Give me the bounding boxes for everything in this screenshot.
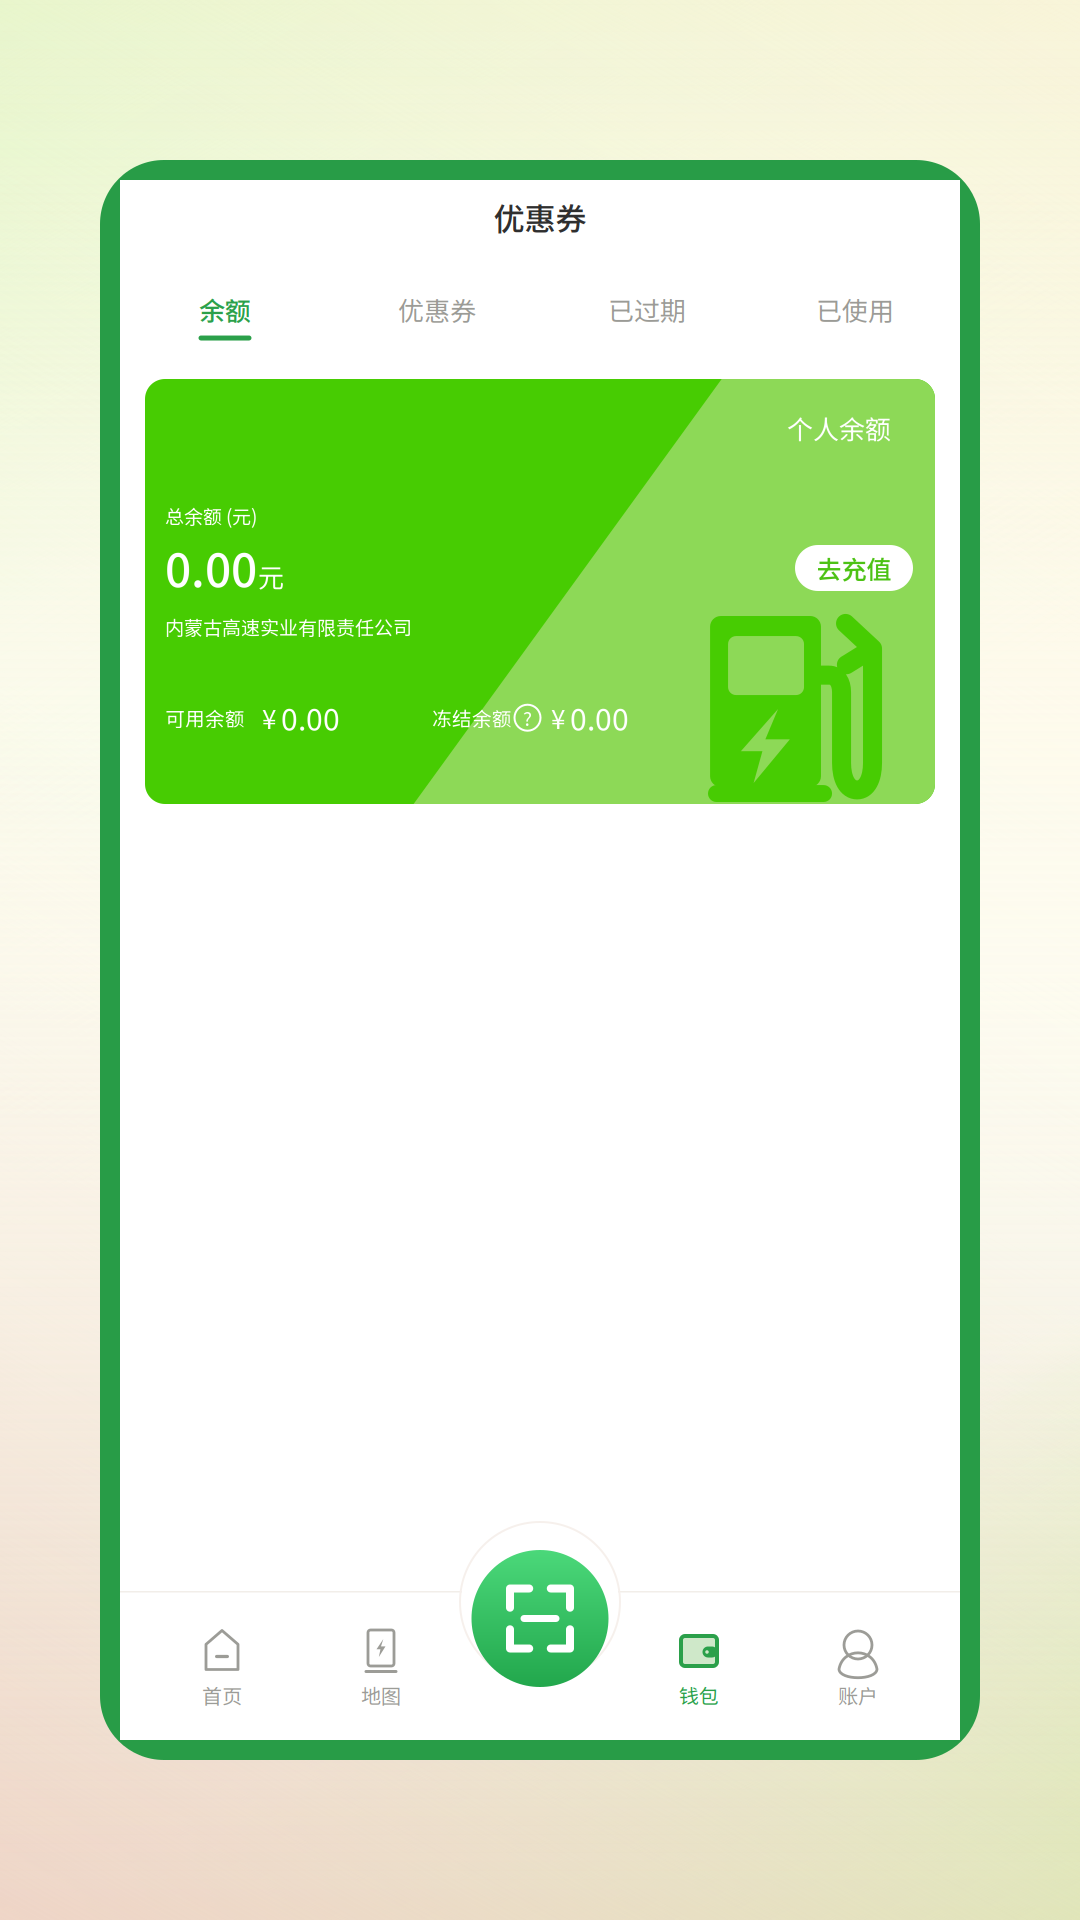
staticText: 已使用 [816,291,894,328]
button[interactable]: 账户 [798,1609,918,1705]
button[interactable]: 钱包 [639,1609,759,1705]
staticText: ? [523,704,532,731]
staticText: 元 [258,557,284,595]
staticText: ¥ [551,699,565,736]
button[interactable]: 首页 [162,1609,282,1705]
staticText: 去充值 [816,550,891,586]
button[interactable]: 去充值 [795,545,913,591]
staticText: 首页 [202,1680,242,1709]
staticText: 地图 [361,1680,401,1709]
staticText: 可用余额 [165,704,245,732]
staticText: ¥ [262,699,276,736]
staticText: 已过期 [608,291,686,328]
staticText: 冻结余额 [432,704,512,732]
button[interactable]: 地图 [321,1609,441,1705]
staticText: 0.00 [281,696,340,739]
button[interactable]: 已使用 [775,290,935,344]
staticText: 总余额 (元) [165,502,257,529]
button[interactable]: 余额 [145,290,305,344]
staticText: 账户 [838,1680,878,1709]
staticText: 内蒙古高速实业有限责任公司 [165,613,412,640]
button[interactable]: 优惠券 [357,290,517,344]
button[interactable]: 已过期 [567,290,727,344]
staticText: 优惠券 [398,291,476,328]
staticText: 个人余额 [787,409,891,447]
staticText: 0.00 [570,696,629,739]
staticText: 优惠券 [493,195,586,239]
staticText: 0.00 [165,534,257,601]
staticText: 余额 [199,291,251,328]
staticText: 钱包 [679,1680,719,1709]
button[interactable]: 扫一扫 [471,1550,608,1687]
